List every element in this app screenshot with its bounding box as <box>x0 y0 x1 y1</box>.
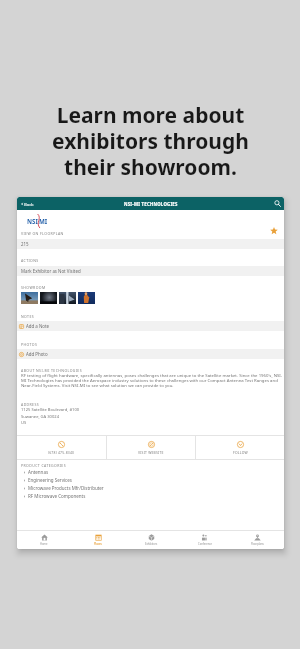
staticText: Exhibitors <box>145 542 158 546</box>
button[interactable]: VISIT WEBSITE <box>107 436 195 459</box>
staticText: Mark Exhibitor as Not Visited <box>21 268 81 274</box>
staticText: (678) 475-8340 <box>48 450 75 455</box>
staticText: Back <box>24 201 34 207</box>
staticText: Floorplans <box>251 542 264 546</box>
button[interactable]: Showroom photo <box>78 292 95 304</box>
button[interactable]: Search <box>271 197 284 210</box>
button[interactable]: Microwave Products Mfr/Distributer <box>23 484 104 492</box>
button[interactable]: 215 <box>17 239 284 249</box>
staticText: Conference <box>198 542 212 546</box>
staticText: PRODUCT CATEGORIES <box>21 463 67 468</box>
button[interactable]: Antennas <box>23 468 49 476</box>
button[interactable]: Add a Note <box>17 321 284 331</box>
staticText: MI <box>39 217 48 225</box>
staticText: NOTES <box>21 314 35 319</box>
staticText: Microwave Products Mfr/Distributer <box>28 485 104 491</box>
staticText: FOLLOW <box>233 450 248 455</box>
button[interactable]: RF Microwave Components <box>23 492 86 500</box>
button[interactable]: Floorplans <box>231 531 284 549</box>
staticText: VIEW ON FLOORPLAN <box>21 231 64 236</box>
staticText: 215 <box>21 241 29 247</box>
staticText: Engineering Services <box>28 477 72 483</box>
button[interactable]: Mark Exhibitor as Not Visited <box>17 266 284 276</box>
staticText: NSI <box>27 217 38 225</box>
staticText: PHOTOS <box>21 342 38 347</box>
button[interactable]: Favorite <box>267 224 281 238</box>
staticText: Antennas <box>28 469 49 475</box>
staticText: SHOWROOM <box>21 285 46 290</box>
staticText: NSI-MI TECHNOLOGIES <box>124 201 178 207</box>
button[interactable]: (678) 475-8340 <box>17 436 106 459</box>
staticText: Add a Note <box>26 323 50 329</box>
staticText: Learn more about exhibitors through thei… <box>52 101 249 181</box>
button[interactable]: Back <box>20 197 37 210</box>
staticText: ABOUT NSI-MI TECHNOLOGIES <box>21 368 83 373</box>
staticText: VISIT WEBSITE <box>138 450 164 455</box>
staticText: ADDRESS <box>21 402 40 407</box>
button[interactable]: Home <box>17 531 71 549</box>
staticText: Home <box>40 542 48 546</box>
staticText: ACTIONS <box>21 258 39 263</box>
button[interactable]: Places <box>71 531 125 549</box>
staticText: RF Microwave Components <box>28 493 86 499</box>
button[interactable]: Showroom photo <box>59 292 76 304</box>
staticText: 1125 Satellite Boulevard, #100 Suwanee, … <box>21 407 80 425</box>
button[interactable]: FOLLOW <box>196 436 284 459</box>
button[interactable]: Add Photo <box>17 349 284 359</box>
button[interactable]: Exhibitors <box>125 531 178 549</box>
staticText: RF testing of flight hardware, specifica… <box>21 372 283 388</box>
button[interactable]: Engineering Services <box>23 476 72 484</box>
button[interactable]: Showroom photo <box>21 292 38 304</box>
staticText: Add Photo <box>26 351 48 357</box>
button[interactable]: Showroom photo <box>40 292 57 304</box>
button[interactable]: Conference <box>178 531 231 549</box>
staticText: Places <box>94 542 102 546</box>
